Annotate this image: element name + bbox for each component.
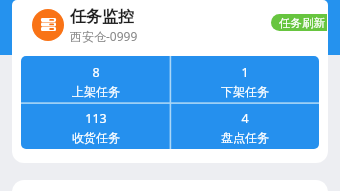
staticText: 113 [85,110,107,127]
button[interactable]: 1 [170,56,319,102]
button[interactable]: 8 [21,56,170,102]
staticText: 任务监控 [70,7,134,27]
button[interactable]: 任务刷新 [271,14,327,31]
staticText: 下架任务 [221,84,269,99]
button[interactable]: 4 [170,102,319,149]
staticText: 任务刷新 [279,16,325,30]
staticText: 西安仓-0999 [70,28,138,44]
staticText: 4 [241,110,249,127]
staticText: 盘点任务 [221,130,269,145]
staticText: 8 [92,64,100,81]
button[interactable]: Warehouse [32,9,64,41]
staticText: 收货任务 [72,130,120,145]
staticText: 1 [241,64,249,81]
staticText: 上架任务 [72,84,120,99]
button[interactable]: 113 [21,102,170,149]
